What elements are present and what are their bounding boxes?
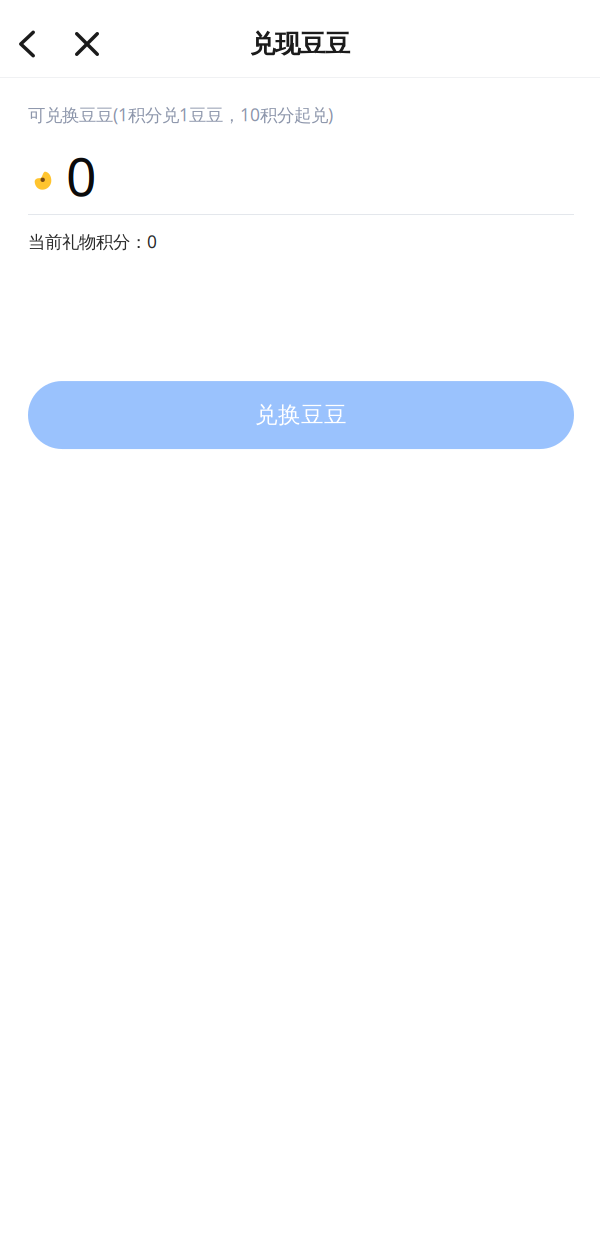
button[interactable]: Close: [66, 19, 108, 69]
button[interactable]: Back: [6, 19, 48, 69]
staticText: 0: [66, 140, 97, 211]
staticText: 可兑换豆豆(1积分兑1豆豆，10积分起兑): [28, 103, 333, 126]
button[interactable]: 兑换豆豆: [28, 381, 574, 449]
staticText: 兑现豆豆: [250, 28, 350, 59]
staticText: 兑换豆豆: [255, 401, 347, 429]
staticText: 当前礼物积分：0: [28, 230, 157, 253]
